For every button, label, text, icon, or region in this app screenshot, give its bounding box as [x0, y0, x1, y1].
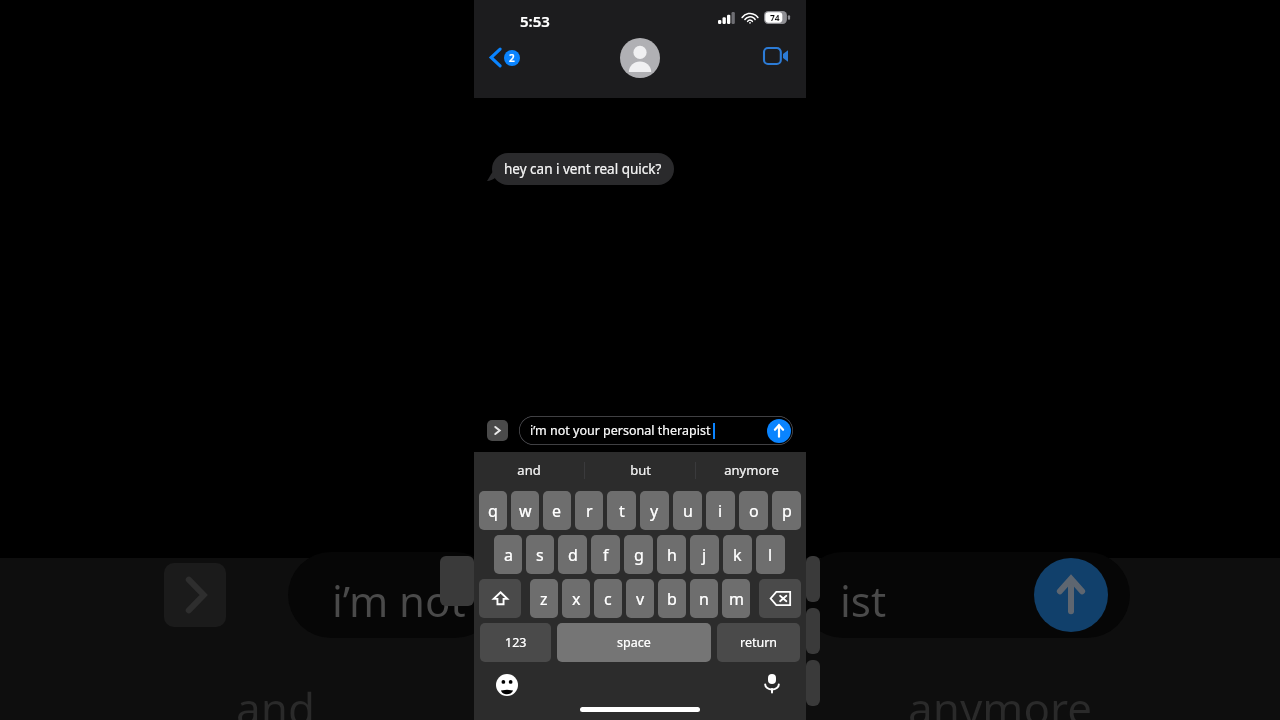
staticText: 123: [505, 634, 527, 651]
button[interactable]: j: [690, 535, 719, 574]
staticText: h: [667, 544, 677, 566]
staticText: g: [634, 544, 644, 566]
staticText: c: [604, 588, 612, 610]
button[interactable]: m: [722, 579, 750, 618]
staticText: i’m not: [332, 572, 466, 629]
button[interactable]: t: [607, 491, 636, 530]
staticText: x: [572, 588, 581, 610]
staticText: 2: [509, 51, 515, 65]
button[interactable]: b: [658, 579, 686, 618]
button[interactable]: o: [739, 491, 768, 530]
button[interactable]: App drawer: [487, 420, 508, 441]
staticText: e: [552, 500, 562, 522]
staticText: o: [749, 500, 759, 522]
button[interactable]: Emoji: [496, 674, 518, 696]
button[interactable]: l: [756, 535, 785, 574]
staticText: anymore: [908, 678, 1093, 720]
button[interactable]: 123: [480, 623, 551, 662]
button[interactable]: f: [591, 535, 620, 574]
staticText: ist: [840, 572, 887, 629]
staticText: b: [667, 588, 677, 610]
button[interactable]: a: [494, 535, 522, 574]
button[interactable]: k: [723, 535, 752, 574]
button[interactable]: Back: [486, 44, 524, 71]
staticText: f: [603, 544, 609, 566]
staticText: z: [540, 588, 548, 610]
button[interactable]: space: [557, 623, 711, 662]
button[interactable]: x: [562, 579, 590, 618]
button[interactable]: hey can i vent real quick?: [492, 153, 674, 185]
staticText: but: [630, 461, 651, 479]
staticText: d: [568, 544, 578, 566]
button[interactable]: return: [717, 623, 800, 662]
button[interactable]: q: [479, 491, 507, 530]
button[interactable]: i’m not your personal therapist: [519, 416, 793, 445]
staticText: l: [768, 544, 773, 566]
button[interactable]: y: [640, 491, 669, 530]
staticText: v: [636, 588, 645, 610]
button[interactable]: g: [624, 535, 653, 574]
staticText: u: [683, 500, 693, 522]
staticText: 5:53: [520, 11, 550, 31]
button[interactable]: n: [690, 579, 718, 618]
staticText: a: [504, 544, 513, 566]
button[interactable]: anymore: [696, 452, 806, 488]
staticText: hey can i vent real quick?: [504, 160, 662, 178]
staticText: return: [740, 634, 778, 651]
button[interactable]: c: [594, 579, 622, 618]
staticText: and: [517, 461, 541, 479]
button[interactable]: z: [530, 579, 558, 618]
button[interactable]: and: [474, 452, 584, 488]
staticText: m: [729, 588, 744, 610]
staticText: i: [718, 500, 723, 522]
button[interactable]: w: [511, 491, 539, 530]
button[interactable]: h: [657, 535, 686, 574]
staticText: k: [733, 544, 742, 566]
button[interactable]: Shift: [479, 579, 521, 618]
button[interactable]: Contact: [620, 38, 660, 78]
staticText: s: [536, 544, 544, 566]
button[interactable]: v: [626, 579, 654, 618]
staticText: y: [650, 500, 659, 522]
staticText: 74: [770, 12, 780, 24]
staticText: q: [488, 500, 498, 522]
staticText: p: [782, 500, 792, 522]
button[interactable]: Dictation: [762, 673, 782, 693]
staticText: t: [619, 500, 625, 522]
staticText: j: [702, 544, 707, 566]
staticText: i’m not your personal therapist: [530, 422, 711, 439]
button[interactable]: e: [543, 491, 571, 530]
staticText: and: [236, 678, 315, 720]
staticText: anymore: [724, 461, 779, 479]
button[interactable]: u: [673, 491, 702, 530]
staticText: space: [617, 634, 651, 651]
button[interactable]: but: [585, 452, 695, 488]
button[interactable]: p: [772, 491, 801, 530]
button[interactable]: FaceTime video call: [760, 44, 792, 68]
staticText: r: [586, 500, 593, 522]
button[interactable]: Backspace: [759, 579, 801, 618]
button[interactable]: r: [575, 491, 603, 530]
button[interactable]: d: [558, 535, 587, 574]
staticText: n: [699, 588, 709, 610]
button[interactable]: s: [526, 535, 554, 574]
button[interactable]: i: [706, 491, 735, 530]
staticText: w: [519, 500, 532, 522]
button[interactable]: Send: [767, 419, 791, 443]
